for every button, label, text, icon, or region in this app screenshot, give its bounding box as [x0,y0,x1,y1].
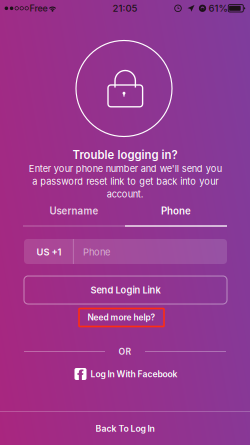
staticText: Enter your phone number and we'll send y… [28,163,221,200]
staticText: Back To Log In [95,423,154,434]
staticText: Need more help? [87,312,155,323]
button[interactable]: Send Login Link [24,276,227,304]
staticText: Phone [83,246,110,258]
staticText: 21:05 [112,3,137,14]
button[interactable]: Username [23,201,125,227]
staticText: US +1 [36,246,61,258]
button[interactable]: Back To Log In [0,412,250,445]
button[interactable]: Need more help? [79,308,164,326]
button[interactable]: Log In With Facebook [70,365,181,383]
staticText: Log In With Facebook [90,369,177,379]
staticText: Phone [161,205,191,217]
staticText: OR [118,346,131,357]
staticText: Username [49,205,98,217]
staticText: 61% [208,3,227,14]
staticText: Send Login Link [90,284,160,296]
staticText: Free [29,3,47,14]
staticText: Trouble logging in? [72,148,177,162]
button[interactable]: Phone [125,201,227,227]
